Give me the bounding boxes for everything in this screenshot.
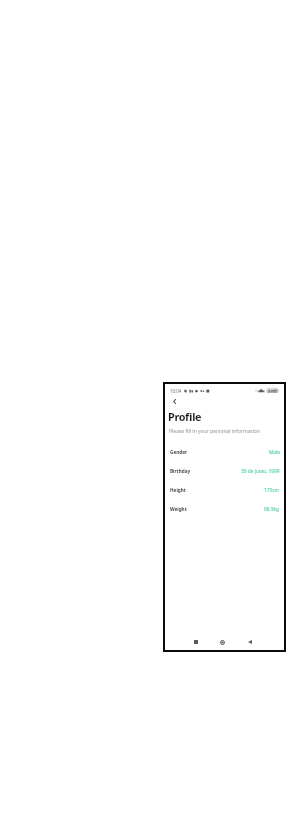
staticText: Please fill in your personal information xyxy=(169,428,260,435)
button[interactable]: Birthday xyxy=(165,462,284,481)
staticText: Male xyxy=(269,449,280,456)
button[interactable]: Back xyxy=(236,635,263,649)
staticText: 30 de junio, 1999 xyxy=(241,468,280,475)
staticText: Birthday xyxy=(170,468,191,474)
staticText: 68.5kg xyxy=(264,506,280,513)
button[interactable]: Gender xyxy=(165,443,284,462)
staticText: Height xyxy=(170,487,186,493)
staticText: Profile xyxy=(168,409,202,424)
staticText: Weight xyxy=(170,506,187,512)
button[interactable]: Height xyxy=(165,481,284,500)
staticText: 175cm xyxy=(264,487,280,494)
staticText: 10:04 xyxy=(170,388,182,394)
button[interactable]: Weight xyxy=(165,500,284,519)
button[interactable]: Recent apps xyxy=(182,635,209,649)
button[interactable]: Back xyxy=(168,395,181,408)
button[interactable]: Home xyxy=(209,635,236,649)
staticText: Gender xyxy=(170,449,188,455)
